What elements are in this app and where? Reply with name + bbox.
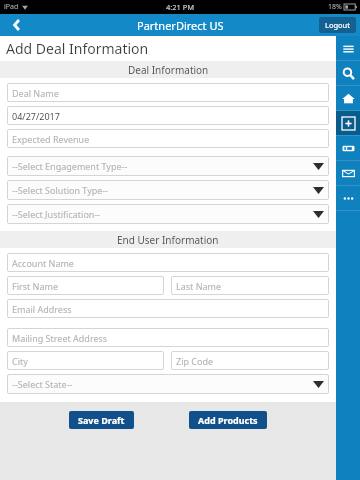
staticText: Deal Name bbox=[12, 87, 59, 99]
button[interactable]: Zip Code bbox=[171, 351, 329, 370]
button[interactable]: Add new bbox=[336, 111, 360, 135]
staticText: Deal Information bbox=[128, 63, 209, 77]
staticText: --Select Solution Type-- bbox=[12, 184, 109, 196]
button[interactable]: --Select Justification-- bbox=[7, 204, 329, 224]
button[interactable]: Cards bbox=[336, 136, 360, 160]
staticText: End User Information bbox=[117, 233, 219, 247]
button[interactable]: Deal Name bbox=[7, 83, 329, 102]
button[interactable]: --Select Solution Type-- bbox=[7, 180, 329, 200]
staticText: --Select Justification-- bbox=[12, 208, 101, 220]
button[interactable]: 04/27/2017 bbox=[7, 106, 329, 125]
staticText: Logout bbox=[325, 20, 350, 30]
staticText: --Select State-- bbox=[12, 378, 73, 390]
staticText: Mailing Street Address bbox=[12, 332, 108, 344]
button[interactable]: --Select State-- bbox=[7, 374, 329, 394]
staticText: Save Draft bbox=[78, 414, 125, 426]
staticText: Add Products bbox=[198, 414, 258, 426]
staticText: Zip Code bbox=[176, 355, 214, 367]
staticText: Email Address bbox=[12, 303, 72, 315]
button[interactable]: Home bbox=[336, 86, 360, 110]
staticText: Account Name bbox=[12, 257, 74, 269]
button[interactable]: First Name bbox=[7, 276, 164, 295]
button[interactable]: Email Address bbox=[7, 299, 329, 318]
staticText: First Name bbox=[12, 280, 58, 292]
button[interactable]: Add Products bbox=[189, 411, 267, 429]
button[interactable]: Last Name bbox=[171, 276, 329, 295]
button[interactable]: Expected Revenue bbox=[7, 129, 329, 148]
staticText: 18% bbox=[328, 2, 342, 12]
staticText: Add Deal Information bbox=[6, 39, 149, 58]
button[interactable]: Back bbox=[0, 14, 32, 36]
staticText: iPad bbox=[4, 2, 19, 12]
button[interactable]: More options bbox=[336, 186, 360, 210]
button[interactable]: City bbox=[7, 351, 164, 370]
staticText: 04/27/2017 bbox=[12, 110, 60, 122]
button[interactable]: Mailing Street Address bbox=[7, 328, 329, 347]
button[interactable]: Messages bbox=[336, 161, 360, 185]
button[interactable]: Save Draft bbox=[69, 411, 134, 429]
staticText: City bbox=[12, 355, 28, 367]
staticText: Last Name bbox=[176, 280, 222, 292]
staticText: Expected Revenue bbox=[12, 133, 90, 145]
staticText: 4:21 PM bbox=[166, 2, 195, 12]
button[interactable]: --Select Engagement Type-- bbox=[7, 156, 329, 176]
button[interactable]: Search bbox=[336, 61, 360, 85]
button[interactable]: Logout bbox=[319, 17, 356, 33]
staticText: --Select Engagement Type-- bbox=[12, 160, 128, 172]
button[interactable]: Menu bbox=[336, 36, 360, 60]
button[interactable]: Account Name bbox=[7, 253, 329, 272]
staticText: PartnerDirect US bbox=[137, 18, 224, 33]
